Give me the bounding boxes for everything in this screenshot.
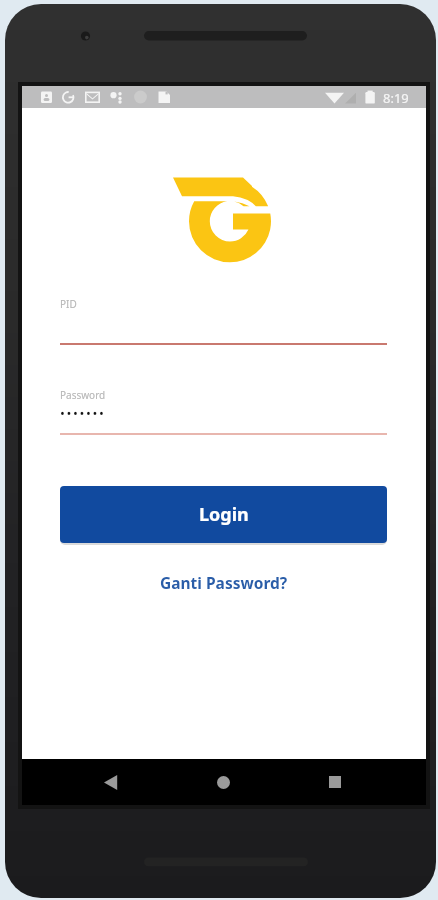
staticText: Password [60,388,106,402]
staticText: Ganti Password? [160,572,288,593]
staticText: PID [60,297,77,311]
staticText: ••••••• [60,404,106,422]
button[interactable]: Login [60,486,387,543]
button[interactable]: Recent apps [312,759,358,805]
staticText: Login [199,502,249,527]
button[interactable]: Home [200,759,246,805]
staticText: 8:19 [383,89,409,107]
button[interactable]: Back [88,759,134,805]
button[interactable]: Ganti Password? [156,568,292,597]
